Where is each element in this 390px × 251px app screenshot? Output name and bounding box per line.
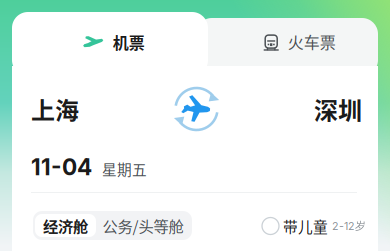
button[interactable]: 经济舱 xyxy=(35,214,96,237)
button[interactable]: 11-04 xyxy=(31,152,357,182)
button[interactable]: 火车票 xyxy=(196,18,378,76)
staticText: 火车票 xyxy=(288,30,336,53)
staticText: 带儿童 xyxy=(283,215,328,237)
staticText: 机票 xyxy=(113,30,145,54)
staticText: 2-12岁 xyxy=(332,219,366,233)
staticText: 深圳 xyxy=(314,92,362,126)
button[interactable]: 公务/头等舱 xyxy=(96,214,190,237)
staticText: 经济舱 xyxy=(43,214,88,237)
button[interactable]: 深圳 xyxy=(314,89,362,129)
staticText: 11-04 xyxy=(31,153,92,181)
staticText: 上海 xyxy=(31,92,79,126)
button[interactable]: 机票 xyxy=(12,12,208,76)
staticText: 公务/头等舱 xyxy=(102,214,183,237)
button[interactable]: 交换出发地与目的地 xyxy=(172,85,220,133)
button[interactable]: 上海 xyxy=(31,89,79,129)
staticText: 星期五 xyxy=(102,158,147,179)
button[interactable]: 带儿童 xyxy=(262,214,366,238)
